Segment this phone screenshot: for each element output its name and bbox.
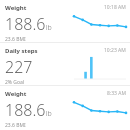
button[interactable]: 10:18 AM <box>0 0 130 42</box>
staticText: 227 <box>5 56 33 78</box>
staticText: Weight <box>5 4 27 12</box>
button[interactable]: 8:33 AM <box>0 86 130 128</box>
button[interactable]: 10:23 AM <box>0 43 130 85</box>
staticText: 188.6 <box>5 99 46 121</box>
staticText: 10:23 AM <box>104 47 126 54</box>
staticText: 23.6 BMI <box>5 122 26 128</box>
staticText: lb <box>46 23 52 33</box>
staticText: lb <box>46 109 52 119</box>
staticText: 188.6 <box>5 13 46 35</box>
staticText: 8:33 AM <box>107 90 126 97</box>
staticText: Weight <box>5 90 27 98</box>
staticText: 23.6 BMI <box>5 36 26 42</box>
staticText: 2% Goal <box>5 79 25 85</box>
staticText: Daily steps <box>5 47 38 55</box>
staticText: 10:18 AM <box>104 4 126 11</box>
